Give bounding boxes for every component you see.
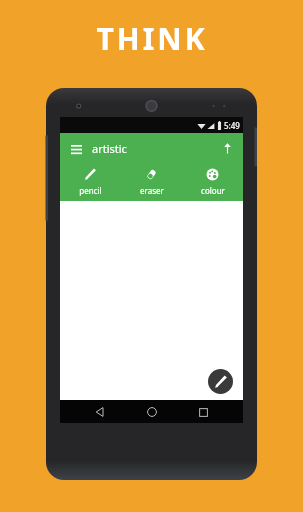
- staticText: pencil: [79, 185, 102, 196]
- button[interactable]: Open navigation menu: [67, 139, 85, 157]
- button[interactable]: Recent apps: [192, 401, 214, 423]
- button[interactable]: New drawing: [208, 369, 233, 394]
- button[interactable]: Home: [141, 401, 163, 423]
- button[interactable]: colour: [182, 163, 243, 201]
- staticText: artistic: [92, 141, 218, 156]
- staticText: colour: [201, 185, 225, 196]
- staticText: eraser: [140, 185, 164, 196]
- staticText: THINK: [96, 18, 208, 59]
- staticText: 5:49: [224, 120, 240, 131]
- button[interactable]: Upload: [218, 139, 236, 157]
- button[interactable]: Back: [89, 401, 111, 423]
- button[interactable]: pencil: [60, 163, 121, 201]
- button[interactable]: eraser: [121, 163, 182, 201]
